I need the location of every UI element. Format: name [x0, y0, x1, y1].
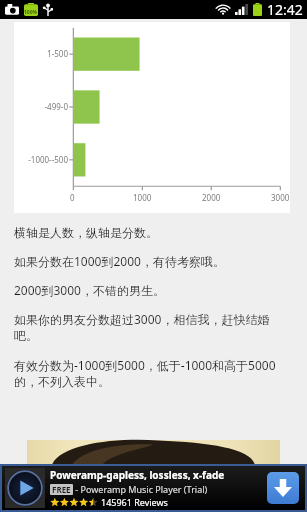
staticText: 12:42	[267, 0, 303, 19]
staticText: 2000到3000，不错的男生。	[14, 282, 293, 298]
button[interactable]: Poweramp app icon	[2, 466, 305, 510]
staticText: FREE	[52, 484, 71, 495]
staticText: - Poweramp Music Player (Trial)	[73, 483, 208, 495]
staticText: 如果分数在1000到2000，有待考察哦。	[14, 253, 293, 269]
staticText: 如果你的男友分数超过3000，相信我，赶快结婚吧。	[14, 311, 293, 344]
other: Poweramp app icon	[5, 468, 45, 508]
staticText: 1000	[133, 192, 152, 203]
button[interactable]	[27, 440, 280, 464]
staticText: 145961 Reviews	[101, 496, 168, 508]
staticText: -1000--500	[28, 154, 68, 165]
staticText: 2000	[202, 192, 221, 203]
button[interactable]: 1-500	[14, 22, 290, 213]
staticText: 3000	[271, 192, 290, 203]
staticText: -499-0	[44, 101, 68, 112]
staticText: 横轴是人数，纵轴是分数。	[14, 225, 293, 240]
staticText: 0	[70, 192, 75, 203]
staticText: 有效分数为-1000到5000，低于-1000和高于5000的，不列入表中。	[14, 357, 293, 390]
button[interactable]: Download	[267, 472, 299, 504]
staticText: 1-500	[47, 48, 68, 59]
staticText: 100%	[24, 9, 38, 16]
staticText: Poweramp-gapless, lossless, x-fade	[50, 468, 225, 482]
